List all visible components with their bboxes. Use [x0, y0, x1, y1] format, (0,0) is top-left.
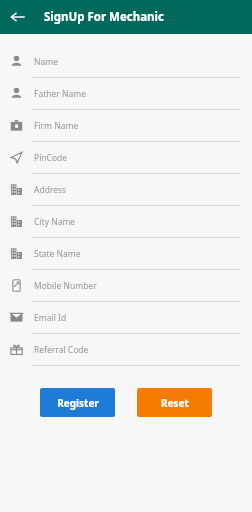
staticText: Firm Name [34, 120, 79, 132]
staticText: Father Name [34, 88, 86, 100]
staticText: State Name [34, 248, 81, 260]
staticText: Name [34, 56, 58, 68]
button[interactable]: Register [40, 388, 115, 417]
button[interactable]: PinCode [0, 142, 252, 174]
button[interactable]: Email Id [0, 302, 252, 334]
button[interactable]: State Name [0, 238, 252, 270]
button[interactable]: Firm Name [0, 110, 252, 142]
staticText: Mobile Number [34, 280, 97, 292]
staticText: Referral Code [34, 344, 89, 356]
staticText: PinCode [34, 152, 68, 164]
staticText: SignUp For Mechanic [44, 9, 164, 25]
button[interactable]: Father Name [0, 78, 252, 110]
button[interactable]: Back [6, 5, 30, 29]
button[interactable]: Reset [137, 388, 212, 417]
staticText: Address [34, 184, 67, 196]
button[interactable]: City Name [0, 206, 252, 238]
button[interactable]: Mobile Number [0, 270, 252, 302]
staticText: City Name [34, 216, 76, 228]
button[interactable]: Address [0, 174, 252, 206]
staticText: Email Id [34, 312, 67, 324]
button[interactable]: Referral Code [0, 334, 252, 366]
staticText: Reset [161, 396, 189, 410]
button[interactable]: Name [0, 46, 252, 78]
staticText: Register [57, 396, 99, 410]
